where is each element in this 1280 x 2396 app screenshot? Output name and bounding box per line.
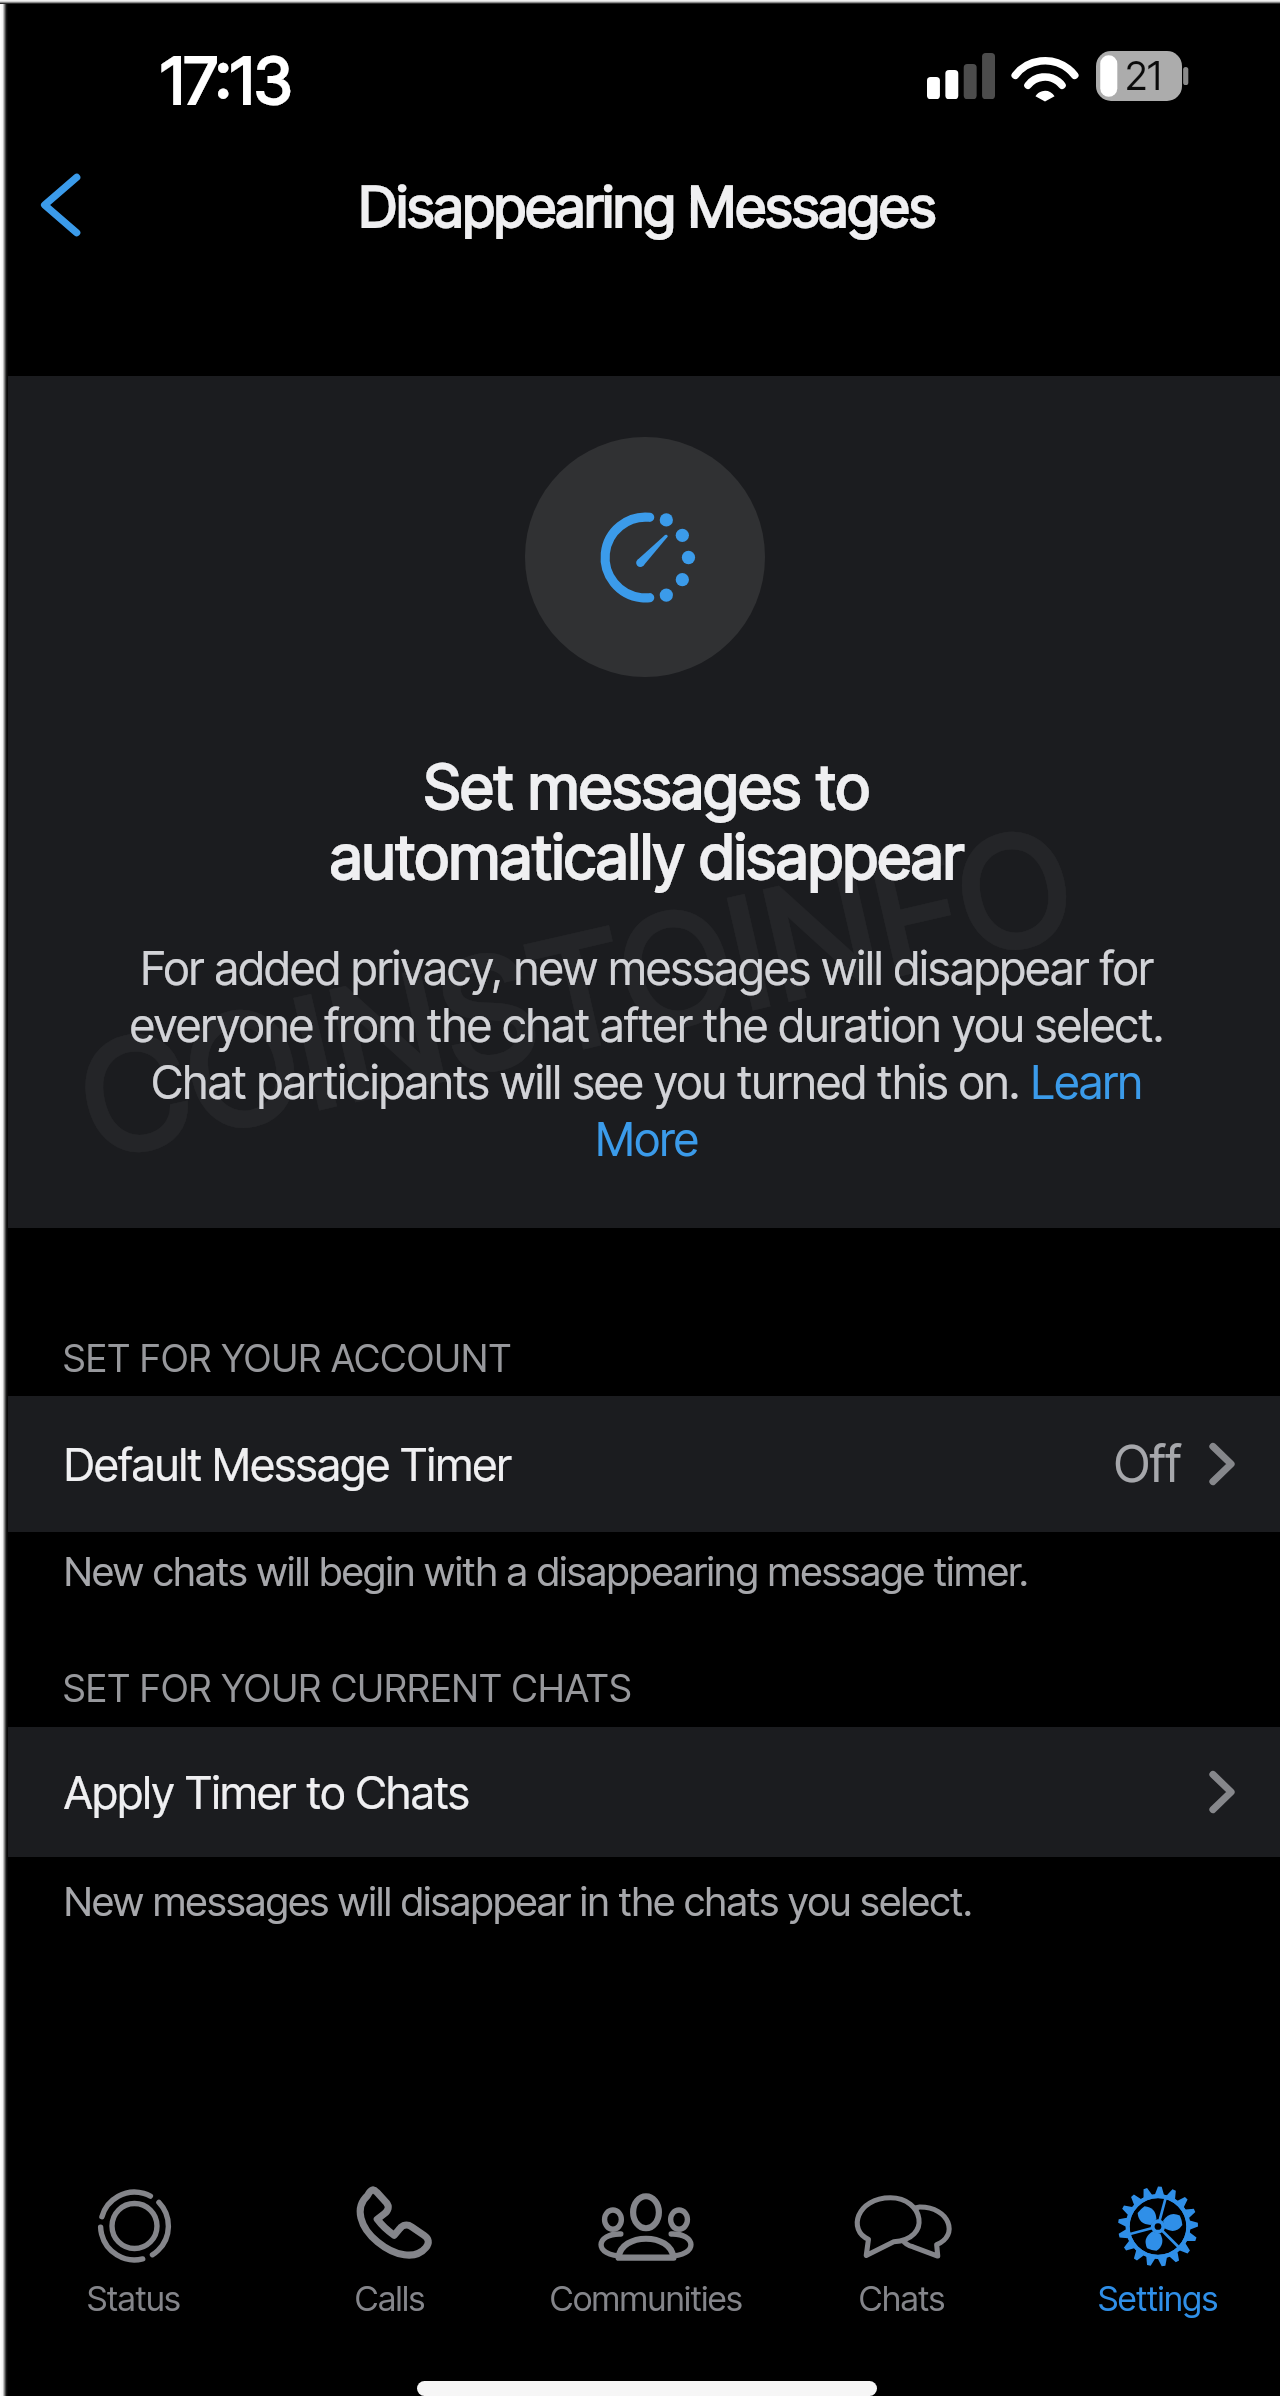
button[interactable]: Apply Timer to Chats [0,1727,1280,1857]
staticText: COINSTOINFO [64,788,1092,1195]
staticText: New chats will begin with a disappearing… [64,1547,1029,1595]
button[interactable]: Calls [262,2186,518,2319]
staticText: Calls [355,2278,425,2319]
button[interactable]: Settings [1030,2186,1280,2319]
staticText: Disappearing Messages [359,173,936,241]
staticText: Set messages to automatically disappear [330,750,964,894]
staticText: Chats [859,2278,945,2319]
button[interactable]: Default Message Timer [0,1396,1280,1532]
staticText: New messages will disappear in the chats… [64,1877,973,1925]
button[interactable]: Learn More [594,1115,702,1165]
staticText: Off [1114,1434,1182,1494]
staticText: Apply Timer to Chats [64,1765,470,1819]
staticText: Status [87,2278,181,2319]
staticText: Settings [1098,2278,1218,2319]
button[interactable]: Communities [518,2186,774,2319]
staticText: SET FOR YOUR CURRENT CHATS [63,1666,633,1711]
button[interactable]: Chats [774,2186,1030,2319]
staticText: SET FOR YOUR ACCOUNT [63,1336,512,1381]
staticText: 21 [1125,51,1162,99]
staticText: For added privacy, new messages will dis… [117,940,1177,1167]
button[interactable]: Status [6,2186,262,2319]
button[interactable]: Back [16,161,104,249]
staticText: Default Message Timer [64,1437,512,1491]
staticText: Communities [550,2278,743,2319]
staticText: 17:13 [161,41,293,120]
button[interactable]: Learn More [1029,1058,1145,1108]
